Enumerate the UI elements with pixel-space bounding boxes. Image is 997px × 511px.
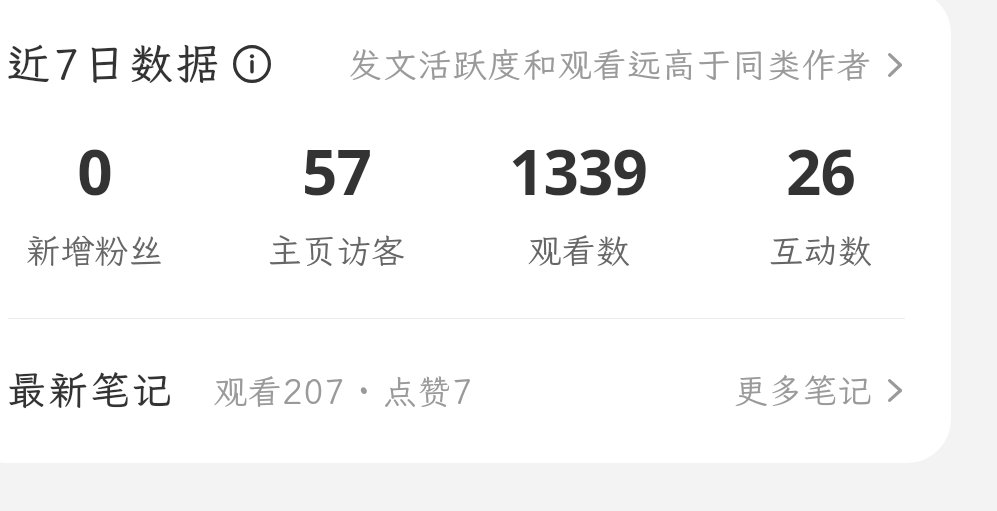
staticText: 新增粉丝: [26, 228, 163, 273]
staticText: 观看数: [527, 228, 630, 273]
button[interactable]: About the 7-day data: [233, 45, 271, 83]
staticText: 主页访客: [268, 228, 405, 273]
staticText: 互动数: [769, 228, 872, 273]
button[interactable]: 最新笔记: [7, 364, 174, 415]
button[interactable]: 近7日数据: [7, 35, 223, 92]
staticText: 发文活跃度和观看远高于同类作者: [348, 42, 872, 87]
button[interactable]: 更多笔记: [734, 368, 902, 413]
button[interactable]: 0: [0, 129, 215, 273]
button[interactable]: 26: [699, 129, 941, 273]
staticText: 57: [302, 129, 371, 213]
button[interactable]: 1339: [457, 129, 699, 273]
staticText: 26: [786, 129, 855, 213]
staticText: 0: [77, 129, 112, 213]
staticText: 1339: [509, 129, 647, 213]
staticText: 更多笔记: [734, 368, 872, 413]
button[interactable]: 57: [215, 129, 457, 273]
staticText: 观看207 · 点赞7: [213, 369, 473, 414]
staticText: 近7日数据: [7, 35, 223, 92]
button[interactable]: 发文活跃度和观看远高于同类作者: [348, 42, 902, 87]
staticText: 最新笔记: [7, 364, 174, 415]
